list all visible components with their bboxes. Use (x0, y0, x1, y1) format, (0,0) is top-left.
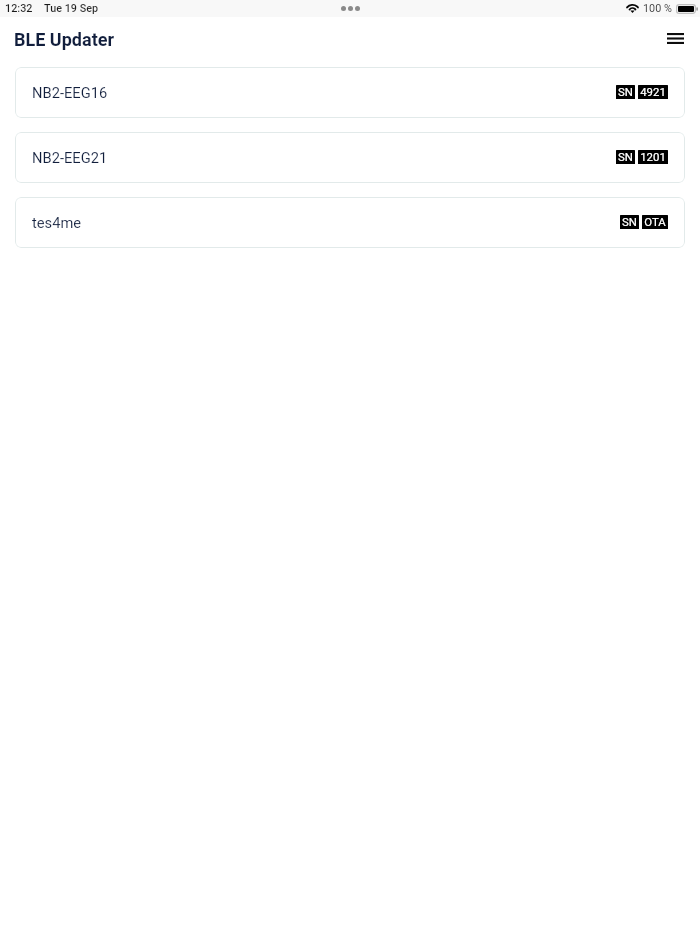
staticText: tes4me (32, 214, 82, 231)
staticText: Tue 19 Sep (44, 2, 99, 15)
staticText: 1201 (640, 150, 666, 162)
staticText: OTA (644, 215, 666, 227)
button[interactable]: tes4me (15, 197, 685, 248)
staticText: NB2-EEG16 (32, 84, 108, 101)
staticText: SN (618, 85, 633, 97)
staticText: 12:32 (5, 2, 33, 15)
button[interactable]: NB2-EEG21 (15, 132, 685, 183)
staticText: 4921 (640, 85, 666, 97)
button[interactable]: Menu (658, 21, 692, 55)
staticText: NB2-EEG21 (32, 149, 108, 166)
staticText: SN (618, 150, 633, 162)
button[interactable]: NB2-EEG16 (15, 67, 685, 118)
staticText: 100 % (643, 2, 672, 15)
staticText: SN (622, 215, 637, 227)
staticText: BLE Updater (14, 29, 115, 50)
